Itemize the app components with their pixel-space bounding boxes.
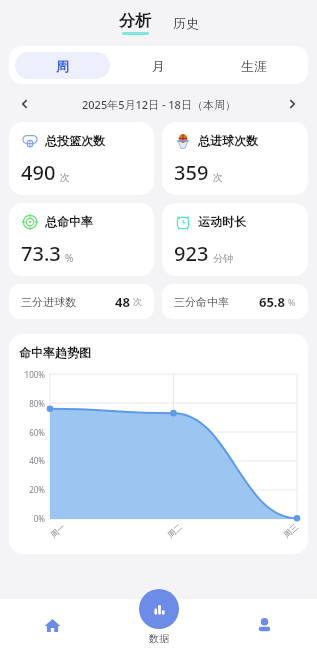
staticText: 次 [213,171,223,184]
button[interactable]: 三分命中率 [162,284,308,319]
staticText: 运动时长 [198,214,246,229]
staticText: 0% [33,513,45,524]
button[interactable]: 分析 [114,9,156,37]
staticText: 48 [115,293,130,311]
staticText: 生涯 [241,58,267,74]
staticText: 数据 [149,632,169,645]
staticText: 周二 [165,522,184,540]
button[interactable]: Profile [211,599,317,651]
staticText: 三分命中率 [174,295,229,309]
staticText: % [288,296,296,308]
button[interactable]: 周 [15,52,110,79]
staticText: 周 [56,58,69,74]
button[interactable]: 运动时长 [162,203,308,276]
staticText: 2025年5月12日 - 18日（本周） [82,97,236,112]
staticText: 周三 [281,522,300,540]
staticText: 分析 [119,11,151,31]
button[interactable]: 总进球次数 [162,122,308,195]
staticText: 923 [174,240,209,267]
staticText: 命中率趋势图 [19,345,91,360]
button[interactable]: Next week [281,93,303,115]
staticText: 总投篮次数 [45,133,105,148]
button[interactable]: Previous week [14,93,36,115]
staticText: % [65,251,74,265]
staticText: 分钟 [213,252,233,265]
button[interactable]: Data [139,589,179,651]
staticText: 100% [24,369,45,380]
staticText: 490 [21,159,56,186]
staticText: 40% [29,455,45,466]
staticText: 65.8 [259,293,285,311]
staticText: 60% [29,427,45,438]
staticText: 次 [60,171,70,184]
staticText: 月 [152,58,165,74]
staticText: 359 [174,159,209,186]
button[interactable]: Home [0,599,105,651]
staticText: 总进球次数 [198,133,258,148]
button[interactable]: 生涯 [206,52,302,79]
staticText: 80% [29,398,45,409]
button[interactable]: 总命中率 [9,203,154,276]
staticText: 历史 [173,15,199,31]
staticText: 73.3 [21,240,61,267]
staticText: 次 [133,296,142,307]
staticText: 总命中率 [45,214,93,229]
button[interactable]: 三分进球数 [9,284,154,319]
staticText: 20% [29,484,45,495]
button[interactable]: 总投篮次数 [9,122,154,195]
staticText: 三分进球数 [21,295,76,309]
staticText: 周一 [48,522,67,540]
button[interactable]: 历史 [168,11,204,35]
button[interactable]: 月 [110,52,206,79]
